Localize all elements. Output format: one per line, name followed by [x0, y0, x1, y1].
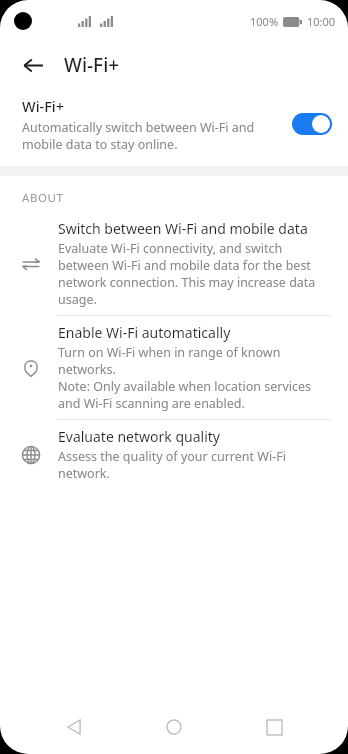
staticText: Evaluate network quality: [58, 427, 220, 446]
button[interactable]: Back: [48, 701, 100, 753]
button[interactable]: Wi-Fi+: [0, 88, 348, 166]
staticText: Automatically switch between Wi-Fi and m…: [22, 119, 282, 152]
staticText: ABOUT: [22, 190, 64, 206]
staticText: Wi-Fi+: [64, 52, 120, 78]
staticText: Switch between Wi-Fi and mobile data: [58, 219, 308, 238]
button[interactable]: Evaluate network quality: [0, 420, 348, 489]
button[interactable]: Switch between Wi-Fi and mobile data: [0, 212, 348, 316]
staticText: Assess the quality of your current Wi-Fi…: [58, 448, 331, 482]
button[interactable]: Enable Wi-Fi automatically: [0, 316, 348, 420]
staticText: 10:00: [307, 14, 336, 29]
button[interactable]: Home: [148, 701, 200, 753]
button[interactable]: Recent apps: [248, 701, 300, 753]
button[interactable]: Wi-Fi+ toggle: [292, 113, 332, 135]
staticText: 100%: [250, 14, 279, 29]
button[interactable]: Back: [13, 45, 53, 85]
staticText: Enable Wi-Fi automatically: [58, 323, 231, 342]
staticText: Wi-Fi+: [22, 96, 65, 116]
staticText: Evaluate Wi-Fi connectivity, and switch …: [58, 240, 331, 308]
staticText: Turn on Wi-Fi when in range of known net…: [58, 344, 331, 412]
